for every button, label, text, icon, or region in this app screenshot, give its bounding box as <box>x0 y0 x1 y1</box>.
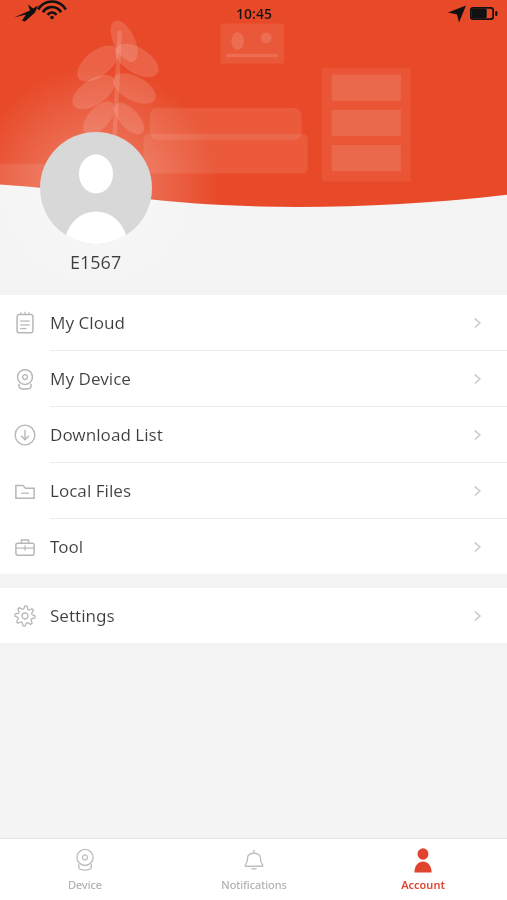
button[interactable]: Account <box>338 839 507 900</box>
staticText: My Device <box>50 367 131 390</box>
button[interactable]: Tool <box>0 519 507 574</box>
staticText: Device <box>68 877 102 892</box>
staticText: 10:45 <box>236 4 272 23</box>
button[interactable]: Notifications <box>169 839 338 900</box>
staticText: Notifications <box>221 877 287 892</box>
button[interactable]: Device <box>0 839 169 900</box>
staticText: Tool <box>50 535 84 558</box>
staticText: Local Files <box>50 479 132 502</box>
button[interactable]: Local Files <box>0 463 507 519</box>
button[interactable]: My Device <box>0 351 507 407</box>
button[interactable]: Download List <box>0 407 507 463</box>
staticText: Download List <box>50 423 163 446</box>
staticText: My Cloud <box>50 311 125 334</box>
button[interactable]: Profile photo <box>40 132 152 244</box>
staticText: Account <box>401 877 445 892</box>
staticText: E1567 <box>70 250 122 275</box>
button[interactable]: Settings <box>0 588 507 643</box>
button[interactable]: My Cloud <box>0 295 507 351</box>
staticText: Settings <box>50 604 115 627</box>
